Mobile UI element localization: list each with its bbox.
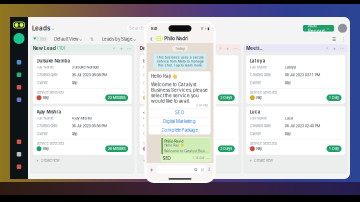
staticText: Default View ⌄ xyxy=(54,37,82,42)
staticText: Jacques xyxy=(143,109,163,114)
staticText: ⋯ xyxy=(127,46,132,51)
staticText: Search xyxy=(129,26,144,31)
button[interactable]: + xyxy=(246,157,345,163)
button[interactable]: Camera xyxy=(200,167,204,172)
staticText: Service Selected xyxy=(36,90,63,94)
staticText: Service Selected xyxy=(36,141,63,145)
staticText: Service Selected xyxy=(143,141,170,145)
button[interactable]: Nav item xyxy=(17,68,21,81)
button[interactable]: Account xyxy=(338,24,347,33)
staticText: Jacques xyxy=(178,116,192,120)
staticText: + xyxy=(333,45,336,51)
staticText: Raji xyxy=(256,146,262,151)
staticText: 26 Minutes xyxy=(108,146,126,151)
staticText: Owner xyxy=(36,131,47,136)
button[interactable]: ▼ xyxy=(32,36,48,42)
staticText: Service Selected xyxy=(143,90,170,94)
button[interactable]: Latoya xyxy=(246,55,345,104)
button[interactable]: Ajay Mishra xyxy=(33,106,132,155)
staticText: ⋮ xyxy=(341,36,346,42)
staticText: Latoya xyxy=(250,58,266,63)
staticText: (10) xyxy=(56,46,66,51)
button[interactable]: Complete Package xyxy=(148,126,210,134)
button[interactable]: Digital Marketing xyxy=(148,117,210,126)
button[interactable]: + xyxy=(33,157,132,163)
staticText: 2:14 PM ✓✓ xyxy=(192,157,209,160)
staticText: 06 Jul 2023 06:35 PM xyxy=(178,124,213,128)
staticText: Ajay Mishra xyxy=(71,116,91,120)
staticText: Create new xyxy=(147,158,166,163)
button[interactable]: Nav item xyxy=(17,56,21,68)
staticText: ⇅ xyxy=(90,37,94,42)
staticText: ⋯ xyxy=(340,46,345,51)
button[interactable]: Nav item xyxy=(17,160,21,173)
staticText: Full Name xyxy=(250,116,267,120)
staticText: Hello Raji 👋 xyxy=(164,143,184,147)
staticText: New Lead xyxy=(33,45,56,51)
staticText: ✿ xyxy=(194,167,198,172)
staticText: + xyxy=(36,157,39,163)
button[interactable]: Nav item xyxy=(17,135,21,148)
staticText: This business uses a secure service from… xyxy=(156,55,203,67)
staticText: Created date xyxy=(36,73,57,77)
staticText: Eugenia Palasazi Srl xyxy=(178,65,212,69)
staticText: Today xyxy=(175,46,185,50)
staticText: ◎ xyxy=(200,167,204,172)
button[interactable]: SEO xyxy=(148,109,210,117)
staticText: 2 Days xyxy=(220,146,232,151)
button[interactable]: Voice message xyxy=(208,167,211,172)
staticText: Meeti... xyxy=(246,45,262,51)
staticText: ⋯ xyxy=(233,46,238,51)
staticText: Owner xyxy=(36,80,47,85)
staticText: + xyxy=(120,45,123,51)
staticText: ⌕ xyxy=(219,46,222,50)
button[interactable]: + xyxy=(140,157,238,163)
staticText: ▼ xyxy=(33,37,36,41)
button[interactable]: Jacques xyxy=(140,106,238,155)
staticText: (7) xyxy=(176,46,183,51)
staticText: 06 Jul 2023 02:40 PM xyxy=(285,124,320,128)
staticText: + xyxy=(143,157,146,163)
staticText: Create new xyxy=(40,158,59,163)
button[interactable]: Dulsuke Namba xyxy=(33,55,132,104)
staticText: 23 Minutes xyxy=(108,95,126,100)
staticText: Full Name xyxy=(36,116,53,120)
staticText: Leads by Stage ⌄ xyxy=(102,37,136,42)
staticText: ⌄ xyxy=(326,26,329,30)
button[interactable]: Stickers xyxy=(194,167,198,172)
button[interactable]: Nav item xyxy=(17,81,21,93)
staticText: Add Record xyxy=(308,23,325,34)
button[interactable]: Luca xyxy=(246,106,345,155)
button[interactable]: Nav item xyxy=(17,93,21,106)
button[interactable]: Add Record xyxy=(303,25,334,31)
staticText: 2 Days xyxy=(220,95,232,100)
staticText: Luca xyxy=(250,109,261,114)
staticText: 06 Jul 2023 03:11 PM xyxy=(285,73,320,77)
staticText: ‹ xyxy=(150,34,153,43)
staticText: Raji xyxy=(178,131,184,136)
staticText: Created date xyxy=(143,124,164,128)
staticText: Latoya xyxy=(285,65,296,69)
staticText: SEO xyxy=(175,110,184,115)
staticText: + xyxy=(149,166,153,173)
staticText: Digital Marketing xyxy=(163,119,196,124)
staticText: + xyxy=(249,157,252,163)
staticText: 1 Day xyxy=(329,146,339,151)
staticText: 06 Jul 2023 09:26 PM xyxy=(178,73,213,77)
button[interactable]: Attach xyxy=(149,166,154,173)
staticText: Created date xyxy=(250,73,271,77)
staticText: Full Name xyxy=(250,65,267,69)
staticText: Full Name xyxy=(143,116,160,120)
staticText: ⌄ xyxy=(50,25,55,31)
staticText: Raji xyxy=(150,95,156,100)
staticText: Owner xyxy=(250,80,261,85)
staticText: Created date xyxy=(143,73,164,77)
staticText: Owner xyxy=(143,80,154,85)
staticText: Complete Package xyxy=(161,128,197,133)
button[interactable]: Back xyxy=(149,34,154,43)
button[interactable]: Nav item xyxy=(17,148,21,160)
staticText: 1 Day xyxy=(329,95,339,100)
staticText: Create new xyxy=(254,158,273,163)
button[interactable]: Eugenia Palasazi Srl xyxy=(140,55,238,104)
